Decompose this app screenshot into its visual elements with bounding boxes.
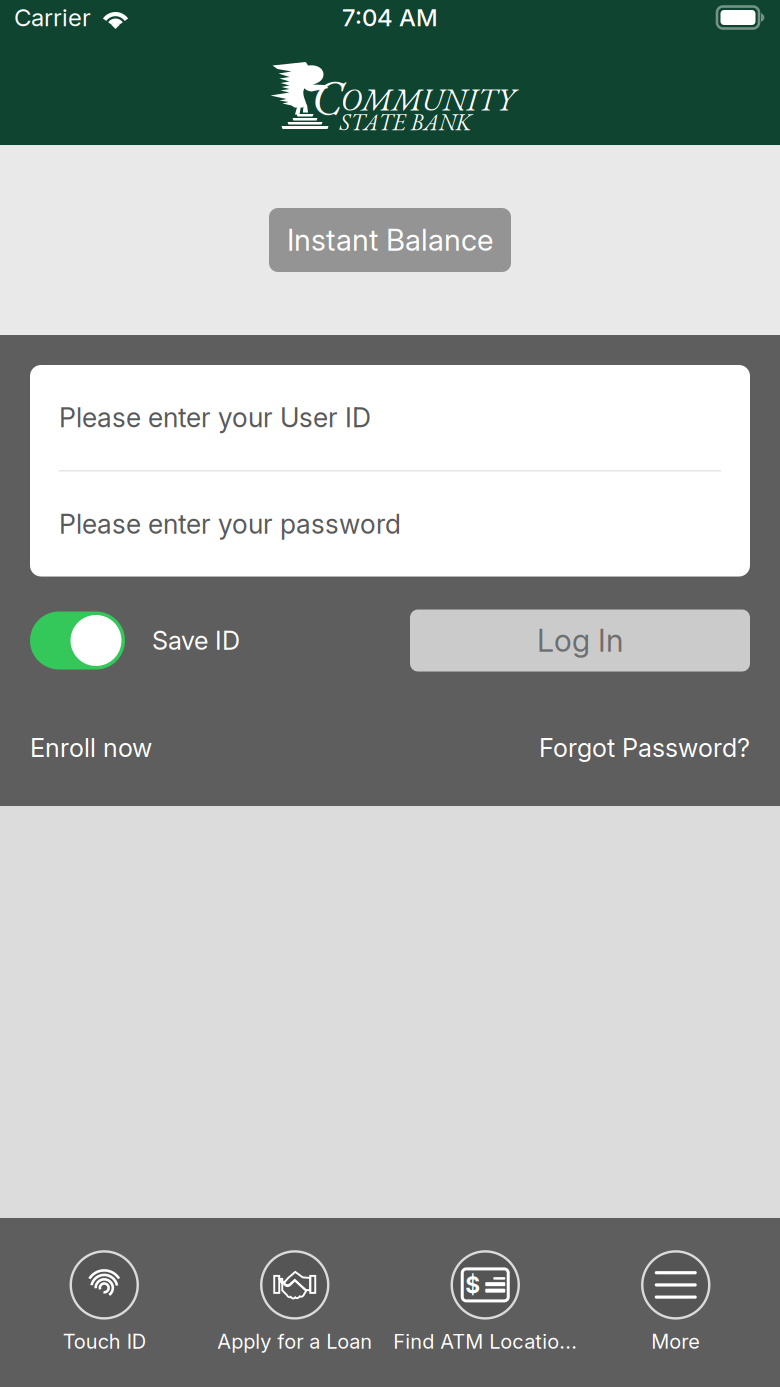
button[interactable]: $ [390,1251,580,1354]
staticText: Forgot Password? [539,732,750,763]
staticText: C [311,65,342,130]
staticText: Carrier [14,3,91,32]
button[interactable]: More [580,1251,771,1354]
button[interactable]: Log In [410,609,750,671]
button[interactable]: Touch ID [9,1251,199,1354]
staticText: Touch ID [63,1329,146,1354]
button[interactable]: Instant Balance [269,208,511,272]
staticText: More [651,1329,700,1354]
staticText: Please enter your User ID [59,401,371,434]
button[interactable]: Apply for a Loan [199,1251,390,1354]
staticText: Enroll now [30,732,152,763]
button[interactable]: Forgot Password? [539,732,750,763]
button[interactable]: Enroll now [30,732,152,763]
staticText: Please enter your password [59,508,401,540]
staticText: OMMUNITY [340,79,514,119]
staticText: $ [465,1271,480,1299]
staticText: Find ATM Locatio... [393,1329,577,1354]
staticText: STATE BANK [339,107,471,137]
staticText: Log In [537,622,623,659]
staticText: Save ID [152,625,240,656]
staticText: Instant Balance [287,222,493,258]
staticText: 7:04 AM [342,3,438,32]
staticText: Apply for a Loan [217,1329,372,1354]
button[interactable]: Save ID [30,611,240,669]
